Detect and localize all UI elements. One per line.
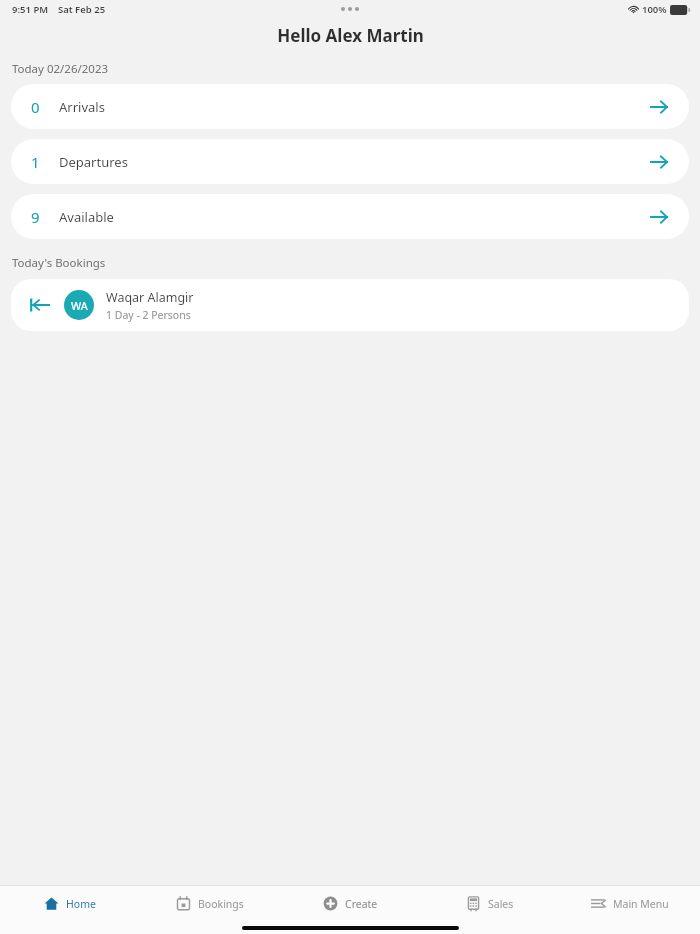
staticText: Today 02/26/2023	[12, 61, 109, 77]
button[interactable]: Create	[280, 886, 420, 921]
staticText: Home	[66, 897, 96, 911]
staticText: Arrivals	[59, 98, 105, 116]
staticText: Bookings	[198, 897, 244, 911]
staticText: Available	[59, 208, 114, 226]
button[interactable]: WA	[11, 279, 689, 331]
staticText: Sales	[488, 897, 514, 911]
button[interactable]: Home	[0, 886, 140, 921]
button[interactable]: 9	[11, 194, 689, 239]
staticText: 1	[31, 152, 40, 172]
staticText: Departures	[59, 153, 128, 171]
staticText: Sat Feb 25	[58, 3, 106, 16]
button[interactable]: Sales	[420, 886, 560, 921]
staticText: 100%	[642, 3, 667, 16]
staticText: 1 Day - 2 Persons	[106, 308, 191, 322]
staticText: 0	[31, 97, 40, 117]
staticText: 9	[31, 207, 40, 227]
staticText: Waqar Alamgir	[106, 289, 194, 306]
staticText: Create	[345, 897, 378, 911]
button[interactable]: 0	[11, 84, 689, 129]
button[interactable]: 1	[11, 139, 689, 184]
staticText: Hello Alex Martin	[277, 24, 424, 47]
staticText: Today's Bookings	[12, 255, 106, 271]
button[interactable]: Bookings	[140, 886, 280, 921]
staticText: Main Menu	[613, 897, 669, 911]
staticText: WA	[71, 298, 88, 313]
staticText: 9:51 PM	[12, 3, 49, 16]
button[interactable]: Main Menu	[560, 886, 700, 921]
